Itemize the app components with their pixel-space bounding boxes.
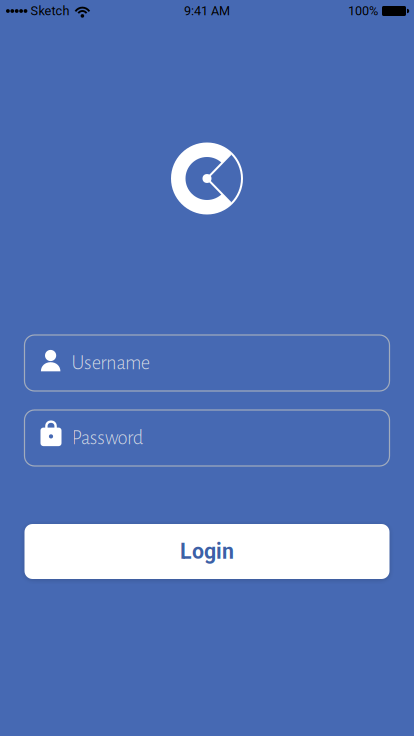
staticText: Login [180,539,234,564]
button[interactable]: Username [24,335,389,391]
staticText: Password [71,428,144,448]
button[interactable]: Password [24,410,389,466]
staticText: Username [71,353,150,373]
staticText: 100% [348,4,378,18]
button[interactable]: Login [24,524,389,579]
staticText: 9:41 AM [184,4,230,18]
staticText: Sketch [30,4,69,18]
